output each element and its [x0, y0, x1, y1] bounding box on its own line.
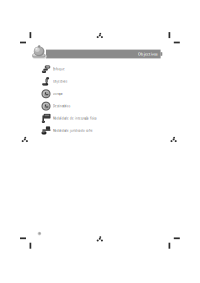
staticText: Modalidade de integração física [53, 117, 96, 120]
button[interactable]: Modalidade de integração física [39, 112, 159, 124]
button[interactable]: Objectivos [39, 75, 159, 88]
staticText: Duração [53, 92, 63, 95]
button[interactable]: Objectivos [46, 50, 161, 58]
staticText: Enfoque [53, 67, 65, 71]
staticText: Objectivos [138, 51, 158, 57]
button[interactable]: Modalidade jurídica do cofre [39, 125, 159, 137]
staticText: Destinatários [53, 104, 70, 108]
button[interactable]: Destinatários [39, 100, 159, 112]
button[interactable]: Duração [39, 88, 159, 100]
staticText: Modalidade jurídica do cofre [53, 129, 93, 132]
button[interactable]: Enfoque [39, 63, 159, 75]
staticText: Objectivos [53, 80, 67, 83]
